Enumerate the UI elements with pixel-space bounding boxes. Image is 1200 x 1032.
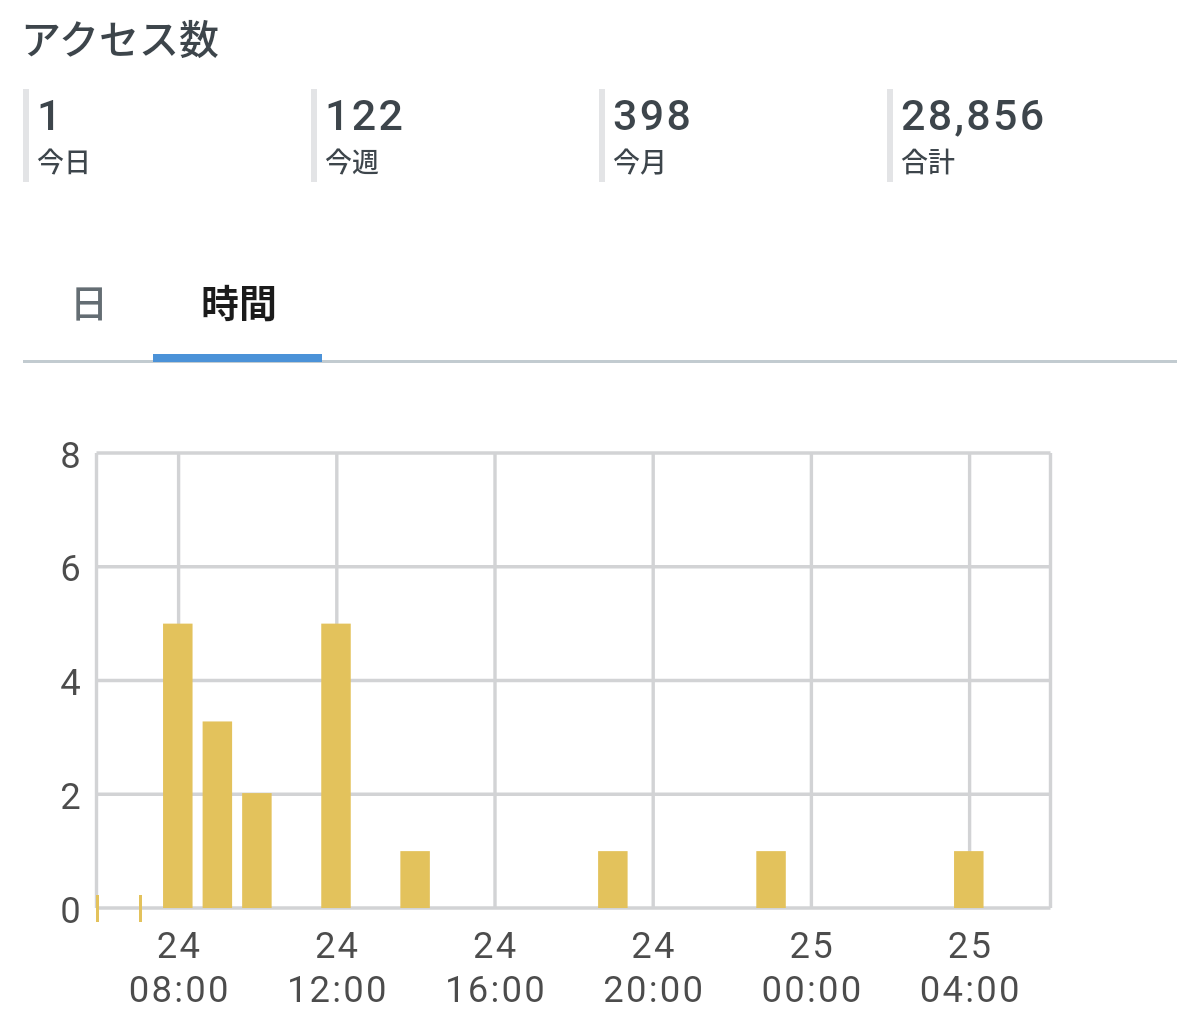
button[interactable]: 1 [23, 89, 311, 182]
button[interactable]: 日 [23, 254, 155, 346]
staticText: アクセス数 [21, 8, 219, 66]
button[interactable]: 122 [311, 89, 599, 182]
staticText: 1 [37, 90, 64, 140]
staticText: 日 [70, 273, 109, 328]
staticText: 合計 [901, 141, 955, 177]
staticText: 時間 [201, 273, 278, 328]
staticText: 122 [325, 90, 406, 140]
staticText: 398 [613, 90, 694, 140]
staticText: 28,856 [901, 90, 1047, 140]
button[interactable]: 時間 [155, 254, 323, 346]
button[interactable]: 398 [599, 89, 887, 182]
other: Hourly access count bar chart [0, 0, 1200, 1032]
staticText: 今月 [613, 141, 667, 177]
staticText: 今週 [325, 141, 379, 177]
button[interactable]: 28,856 [887, 89, 1175, 182]
staticText: 今日 [37, 141, 91, 177]
